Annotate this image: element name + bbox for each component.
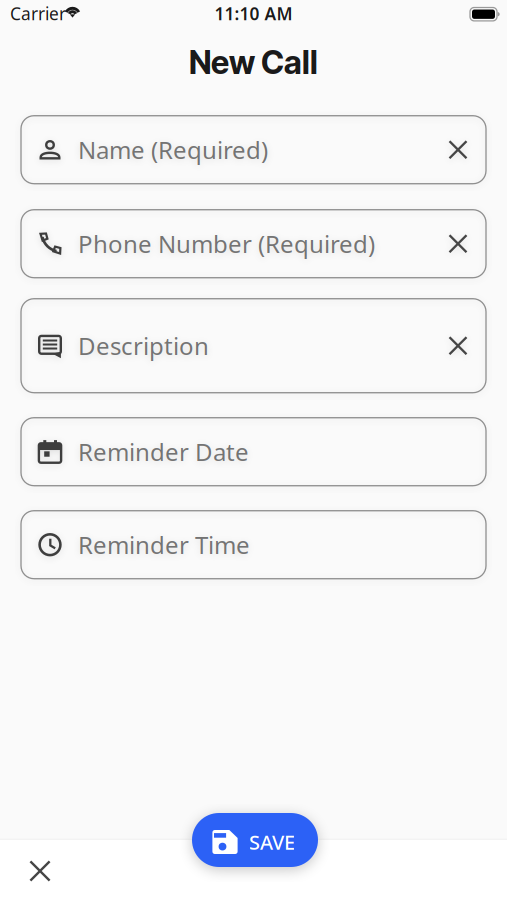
button[interactable]: Name (Required) — [21, 116, 486, 184]
button[interactable]: Clear — [434, 322, 482, 370]
staticText: Description — [78, 330, 209, 362]
staticText: Name (Required) — [78, 134, 268, 166]
button[interactable]: SAVE — [192, 813, 318, 867]
staticText: Reminder Time — [78, 529, 250, 561]
button[interactable]: Reminder Time — [21, 511, 486, 579]
button[interactable]: Description — [21, 299, 486, 393]
staticText: 11:10 AM — [214, 2, 292, 25]
staticText: New Call — [189, 43, 318, 82]
staticText: SAVE — [249, 829, 295, 855]
staticText: Reminder Date — [78, 436, 249, 468]
button[interactable]: Close — [16, 847, 64, 895]
button[interactable]: Clear — [434, 126, 482, 174]
button[interactable]: Clear — [434, 220, 482, 268]
staticText: Carrier — [10, 2, 66, 25]
button[interactable]: Phone Number (Required) — [21, 210, 486, 278]
button[interactable]: Reminder Date — [21, 418, 486, 486]
staticText: Phone Number (Required) — [78, 228, 375, 260]
